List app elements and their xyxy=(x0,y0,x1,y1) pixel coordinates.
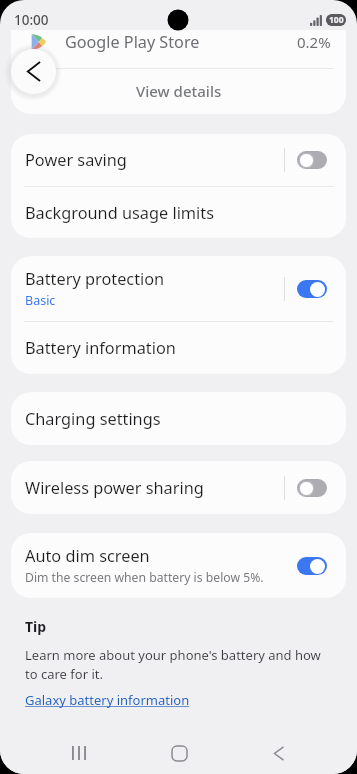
staticText: 100 xyxy=(329,14,344,26)
button[interactable]: Back xyxy=(11,49,56,94)
staticText: Battery protection xyxy=(25,268,165,290)
staticText: View details xyxy=(136,81,222,101)
staticText: Galaxy battery information xyxy=(25,691,190,709)
staticText: Dim the screen when battery is below 5%. xyxy=(25,569,264,586)
staticText: Basic xyxy=(25,292,56,309)
button[interactable]: Battery information xyxy=(11,322,346,374)
button[interactable]: Wireless power sharing xyxy=(11,461,346,514)
staticText: Wireless power sharing xyxy=(25,477,204,499)
button[interactable]: Charging settings xyxy=(11,392,346,445)
button[interactable]: Back xyxy=(255,729,303,774)
button[interactable]: Turn on xyxy=(297,479,327,497)
button[interactable]: Home xyxy=(155,729,203,774)
staticText: 10:00 xyxy=(14,11,49,29)
staticText: Google Play Store xyxy=(65,31,200,53)
staticText: Tip xyxy=(25,617,47,636)
button[interactable]: Auto dim screen xyxy=(11,533,346,598)
staticText: 0.2% xyxy=(297,32,331,52)
button[interactable]: Power saving xyxy=(11,134,346,186)
button[interactable]: Galaxy battery information xyxy=(25,691,190,709)
staticText: Power saving xyxy=(25,149,127,171)
button[interactable]: View details xyxy=(11,68,346,114)
staticText: Background usage limits xyxy=(25,202,214,224)
staticText: Charging settings xyxy=(25,408,161,430)
button[interactable]: Background usage limits xyxy=(11,187,346,238)
button[interactable]: Turn off xyxy=(297,280,327,298)
staticText: Learn more about your phone's battery an… xyxy=(25,646,332,683)
staticText: Auto dim screen xyxy=(25,545,150,567)
button[interactable]: Turn off xyxy=(297,557,327,575)
button[interactable]: Battery protection xyxy=(11,256,346,321)
button[interactable]: Turn on xyxy=(297,151,327,169)
button[interactable]: Recent apps xyxy=(55,729,103,774)
staticText: Battery information xyxy=(25,337,176,359)
